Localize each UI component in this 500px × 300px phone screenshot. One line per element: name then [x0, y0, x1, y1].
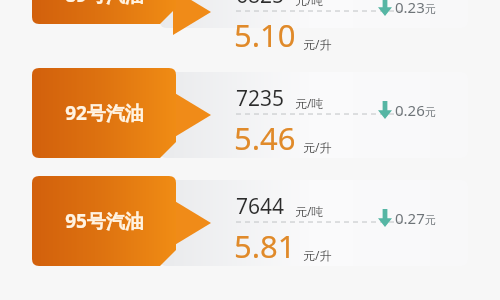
- staticText: 0.26: [395, 100, 425, 120]
- staticText: 5.81: [234, 225, 296, 267]
- staticText: 元: [425, 2, 436, 16]
- staticText: 元/升: [303, 139, 332, 155]
- staticText: 92号汽油: [65, 100, 144, 126]
- button[interactable]: 89号汽油: [32, 0, 176, 24]
- staticText: 5.10: [234, 14, 296, 56]
- staticText: 0.27: [395, 208, 425, 228]
- staticText: 7235: [236, 84, 285, 113]
- staticText: 5.46: [234, 117, 296, 159]
- staticText: 6825: [236, 0, 285, 10]
- other: 详情: [173, 200, 211, 246]
- staticText: 元/吨: [295, 95, 324, 111]
- staticText: 元/升: [303, 247, 332, 263]
- button[interactable]: 详情: [160, 180, 468, 266]
- button[interactable]: 92号汽油: [32, 68, 176, 158]
- other: 下降: [378, 209, 392, 227]
- other: 下降: [378, 101, 392, 119]
- button[interactable]: 95号汽油: [32, 176, 176, 266]
- other: 详情: [173, 0, 211, 35]
- staticText: 89号汽油: [65, 0, 144, 8]
- button[interactable]: 详情: [160, 0, 468, 28]
- staticText: 元/吨: [295, 0, 324, 8]
- other: 下降: [378, 0, 392, 16]
- staticText: 元/升: [303, 36, 332, 52]
- button[interactable]: 详情: [160, 72, 468, 158]
- staticText: 7644: [236, 192, 285, 221]
- staticText: 元/吨: [295, 203, 324, 219]
- staticText: 0.23: [395, 0, 425, 17]
- staticText: 元: [425, 213, 436, 227]
- staticText: 元: [425, 105, 436, 119]
- staticText: 95号汽油: [65, 208, 144, 234]
- other: 详情: [173, 92, 211, 138]
